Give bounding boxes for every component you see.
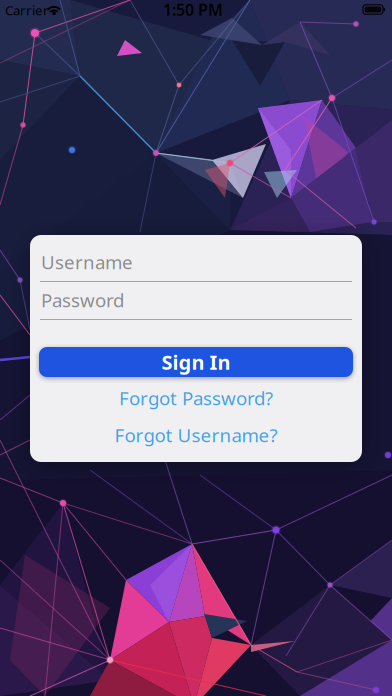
staticText: Password <box>41 288 124 312</box>
staticText: Carrier <box>5 1 49 19</box>
button[interactable]: Forgot Username? <box>114 423 277 447</box>
staticText: 1:50 PM <box>163 0 223 20</box>
staticText: Sign In <box>161 349 230 375</box>
staticText: Forgot Password? <box>119 386 273 410</box>
button[interactable]: Forgot Password? <box>119 386 273 410</box>
staticText: Username <box>41 250 133 274</box>
button[interactable]: Sign In <box>39 347 353 377</box>
staticText: Forgot Username? <box>114 423 277 447</box>
